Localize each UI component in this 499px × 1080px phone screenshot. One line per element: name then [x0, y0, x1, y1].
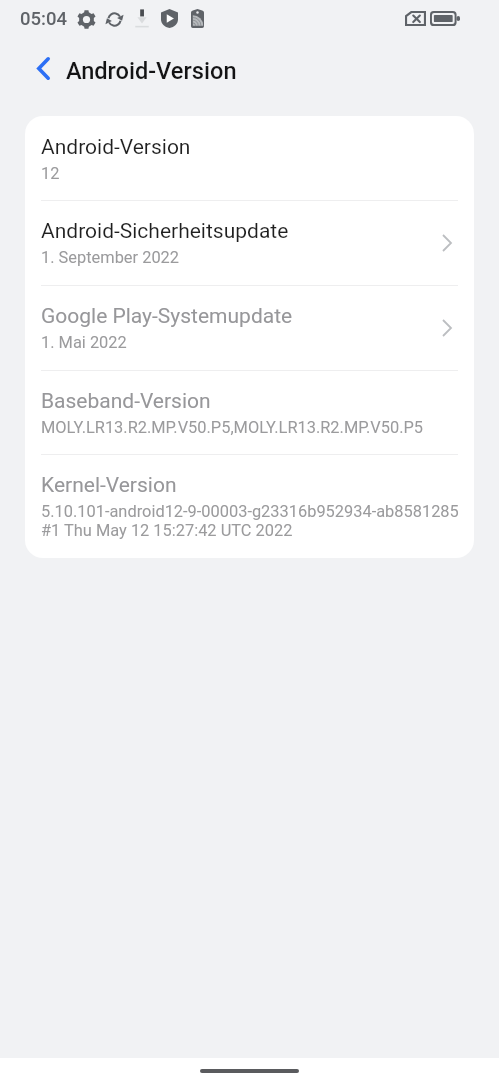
- staticText: 5.10.101-android12-9-00003-g23316b952934…: [41, 502, 459, 521]
- button[interactable]: Google Play-Systemupdate: [25, 285, 474, 370]
- staticText: MOLY.LR13.R2.MP.V50.P5,MOLY.LR13.R2.MP.V…: [41, 418, 424, 437]
- staticText: 12: [41, 164, 60, 183]
- button[interactable]: Android-Sicherheitsupdate: [25, 200, 474, 286]
- staticText: 1. Mai 2022: [41, 333, 127, 352]
- staticText: Kernel-Version: [41, 474, 177, 497]
- button[interactable]: Back: [22, 46, 64, 90]
- button[interactable]: Android-Version: [25, 116, 474, 200]
- staticText: #1 Thu May 12 15:27:42 UTC 2022: [41, 521, 293, 540]
- button[interactable]: Baseband-Version: [25, 370, 474, 454]
- staticText: 1. September 2022: [41, 248, 180, 267]
- staticText: Android-Sicherheitsupdate: [41, 220, 289, 243]
- staticText: Android-Version: [66, 57, 237, 85]
- staticText: Google Play-Systemupdate: [41, 305, 293, 328]
- staticText: Baseband-Version: [41, 390, 211, 413]
- staticText: 05:04: [20, 8, 67, 30]
- staticText: Android-Version: [41, 136, 191, 159]
- button[interactable]: Kernel-Version: [25, 454, 474, 558]
